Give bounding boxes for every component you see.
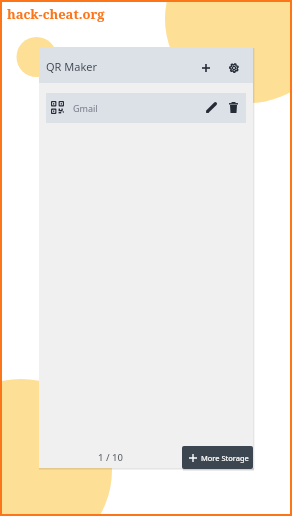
button[interactable]: Add: [192, 47, 220, 82]
staticText: QR Maker: [46, 59, 98, 74]
button[interactable]: Edit: [199, 93, 223, 123]
button[interactable]: Gmail: [46, 93, 246, 123]
button[interactable]: Delete: [223, 93, 245, 123]
button[interactable]: Settings: [220, 47, 248, 82]
staticText: hack-cheat.org: [7, 5, 105, 23]
staticText: 1 / 10: [98, 451, 123, 464]
staticText: Gmail: [73, 102, 98, 114]
button[interactable]: More Storage: [182, 446, 253, 469]
staticText: More Storage: [201, 453, 249, 463]
